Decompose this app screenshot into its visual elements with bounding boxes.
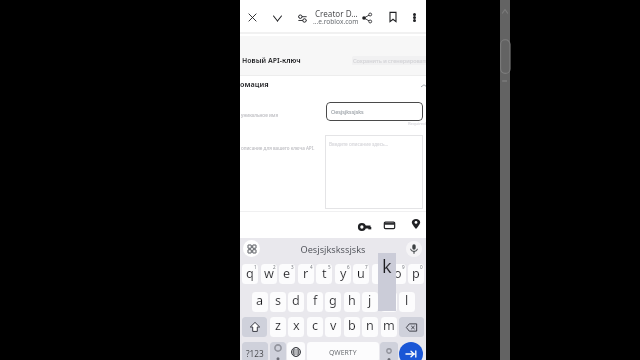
- staticText: 9: [402, 264, 405, 270]
- staticText: Creator D…: [315, 8, 358, 19]
- staticText: …e.roblox.com: [313, 17, 359, 26]
- button[interactable]: Bookmark: [383, 7, 403, 27]
- staticText: 8: [384, 264, 387, 270]
- button[interactable]: l: [399, 292, 415, 312]
- button[interactable]: Change language: [287, 342, 305, 360]
- button[interactable]: h: [344, 292, 360, 312]
- button[interactable]: 8: [372, 264, 388, 284]
- staticText: e: [283, 265, 291, 282]
- button[interactable]: f: [307, 292, 323, 312]
- staticText: 2: [273, 264, 276, 270]
- staticText: c: [312, 317, 319, 334]
- button[interactable]: Сохранить и сгенерировать ключ: [352, 56, 426, 65]
- button[interactable]: Collapse: [268, 9, 287, 28]
- staticText: z: [275, 317, 281, 334]
- staticText: 5: [328, 264, 331, 270]
- button[interactable]: Keyboard toolbar: [243, 240, 260, 257]
- staticText: r: [303, 265, 309, 282]
- button[interactable]: s: [270, 292, 286, 312]
- button[interactable]: Share: [357, 8, 377, 28]
- button[interactable]: v: [325, 317, 341, 337]
- staticText: Сохранить и сгенерировать ключ: [353, 57, 426, 65]
- button[interactable]: b: [344, 317, 360, 337]
- button[interactable]: Введите описание здесь...: [325, 135, 423, 209]
- staticText: s: [275, 292, 282, 309]
- staticText: l: [405, 292, 409, 309]
- button[interactable]: 0: [408, 264, 424, 284]
- button[interactable]: 5: [316, 264, 332, 284]
- button[interactable]: 1: [242, 264, 258, 284]
- staticText: t: [322, 265, 327, 282]
- button[interactable]: Creator D…: [312, 6, 360, 27]
- button[interactable]: Page settings: [293, 9, 312, 28]
- staticText: 1: [254, 264, 257, 270]
- staticText: Oesjsjkskssjsks: [240, 243, 426, 256]
- staticText: x: [293, 317, 300, 334]
- staticText: n: [366, 317, 374, 334]
- button[interactable]: Oesjsjkssjsks: [326, 102, 423, 121]
- staticText: описание для вашего ключа API.: [241, 145, 315, 151]
- button[interactable]: More options: [407, 8, 422, 27]
- button[interactable]: 6: [335, 264, 351, 284]
- button[interactable]: [380, 342, 398, 360]
- staticText: Новый API-ключ: [242, 56, 301, 65]
- button[interactable]: Shift: [242, 317, 267, 337]
- staticText: b: [348, 317, 356, 334]
- staticText: 4: [310, 264, 313, 270]
- button[interactable]: QWERTY: [307, 342, 379, 360]
- button[interactable]: Voice input: [406, 241, 422, 257]
- button[interactable]: a: [252, 292, 268, 312]
- staticText: QWERTY: [329, 348, 357, 357]
- button[interactable]: x: [288, 317, 304, 337]
- button[interactable]: k: [381, 292, 397, 312]
- staticText: ?123: [246, 348, 264, 359]
- button[interactable]: 9: [390, 264, 406, 284]
- button[interactable]: Payment methods: [379, 215, 400, 236]
- staticText: o: [394, 265, 402, 282]
- staticText: d: [292, 292, 300, 309]
- button[interactable]: Passwords: [354, 216, 376, 238]
- button[interactable]: Collapse section: [419, 81, 426, 90]
- button[interactable]: 7: [353, 264, 369, 284]
- button[interactable]: Addresses: [406, 214, 426, 234]
- staticText: омация: [240, 79, 269, 89]
- button[interactable]: n: [362, 317, 378, 337]
- button[interactable]: Close: [244, 9, 261, 26]
- button[interactable]: j: [362, 292, 378, 312]
- staticText: Введите описание здесь...: [329, 141, 389, 147]
- staticText: v: [330, 317, 337, 334]
- staticText: y: [340, 265, 347, 282]
- button[interactable]: m: [381, 317, 397, 337]
- button[interactable]: z: [270, 317, 286, 337]
- staticText: Oesjsjkssjsks: [331, 108, 364, 115]
- button[interactable]: d: [288, 292, 304, 312]
- staticText: j: [368, 292, 372, 309]
- staticText: 0: [420, 264, 423, 270]
- button[interactable]: c: [307, 317, 323, 337]
- button[interactable]: Emoji: [270, 342, 286, 360]
- staticText: 6: [347, 264, 350, 270]
- staticText: w: [264, 265, 274, 282]
- button[interactable]: 3: [279, 264, 295, 284]
- button[interactable]: 4: [298, 264, 314, 284]
- button[interactable]: Backspace: [399, 317, 424, 337]
- staticText: p: [412, 265, 420, 282]
- button[interactable]: Enter: [399, 342, 423, 360]
- staticText: h: [348, 292, 356, 309]
- button[interactable]: g: [325, 292, 341, 312]
- staticText: g: [329, 292, 337, 309]
- staticText: f: [313, 292, 318, 309]
- staticText: q: [246, 265, 254, 282]
- staticText: a: [256, 292, 264, 309]
- staticText: Required: [408, 121, 426, 127]
- staticText: 3: [291, 264, 294, 270]
- staticText: 7: [365, 264, 368, 270]
- button[interactable]: 2: [261, 264, 277, 284]
- staticText: u: [357, 265, 365, 282]
- staticText: m: [383, 317, 395, 334]
- staticText: k: [382, 254, 392, 279]
- staticText: уникальное имя: [241, 112, 279, 118]
- button[interactable]: ?123: [242, 342, 268, 360]
